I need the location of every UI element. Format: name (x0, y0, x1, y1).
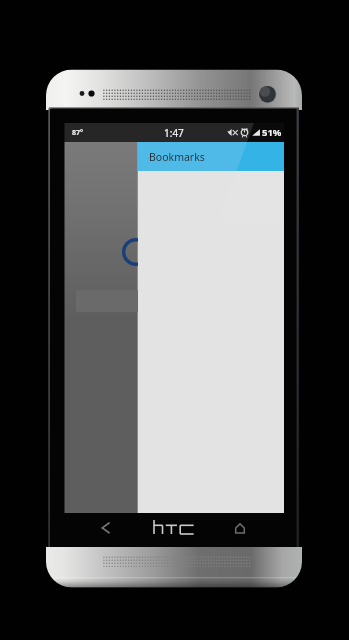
staticText: 87° (72, 128, 83, 138)
button[interactable]: Home (224, 513, 258, 547)
staticText: Bookmarks (149, 150, 205, 164)
staticText: 51% (262, 126, 282, 139)
button[interactable]: Back (90, 513, 124, 547)
staticText: 1:47 (164, 126, 184, 140)
button[interactable]: Bookmarks (138, 142, 285, 171)
